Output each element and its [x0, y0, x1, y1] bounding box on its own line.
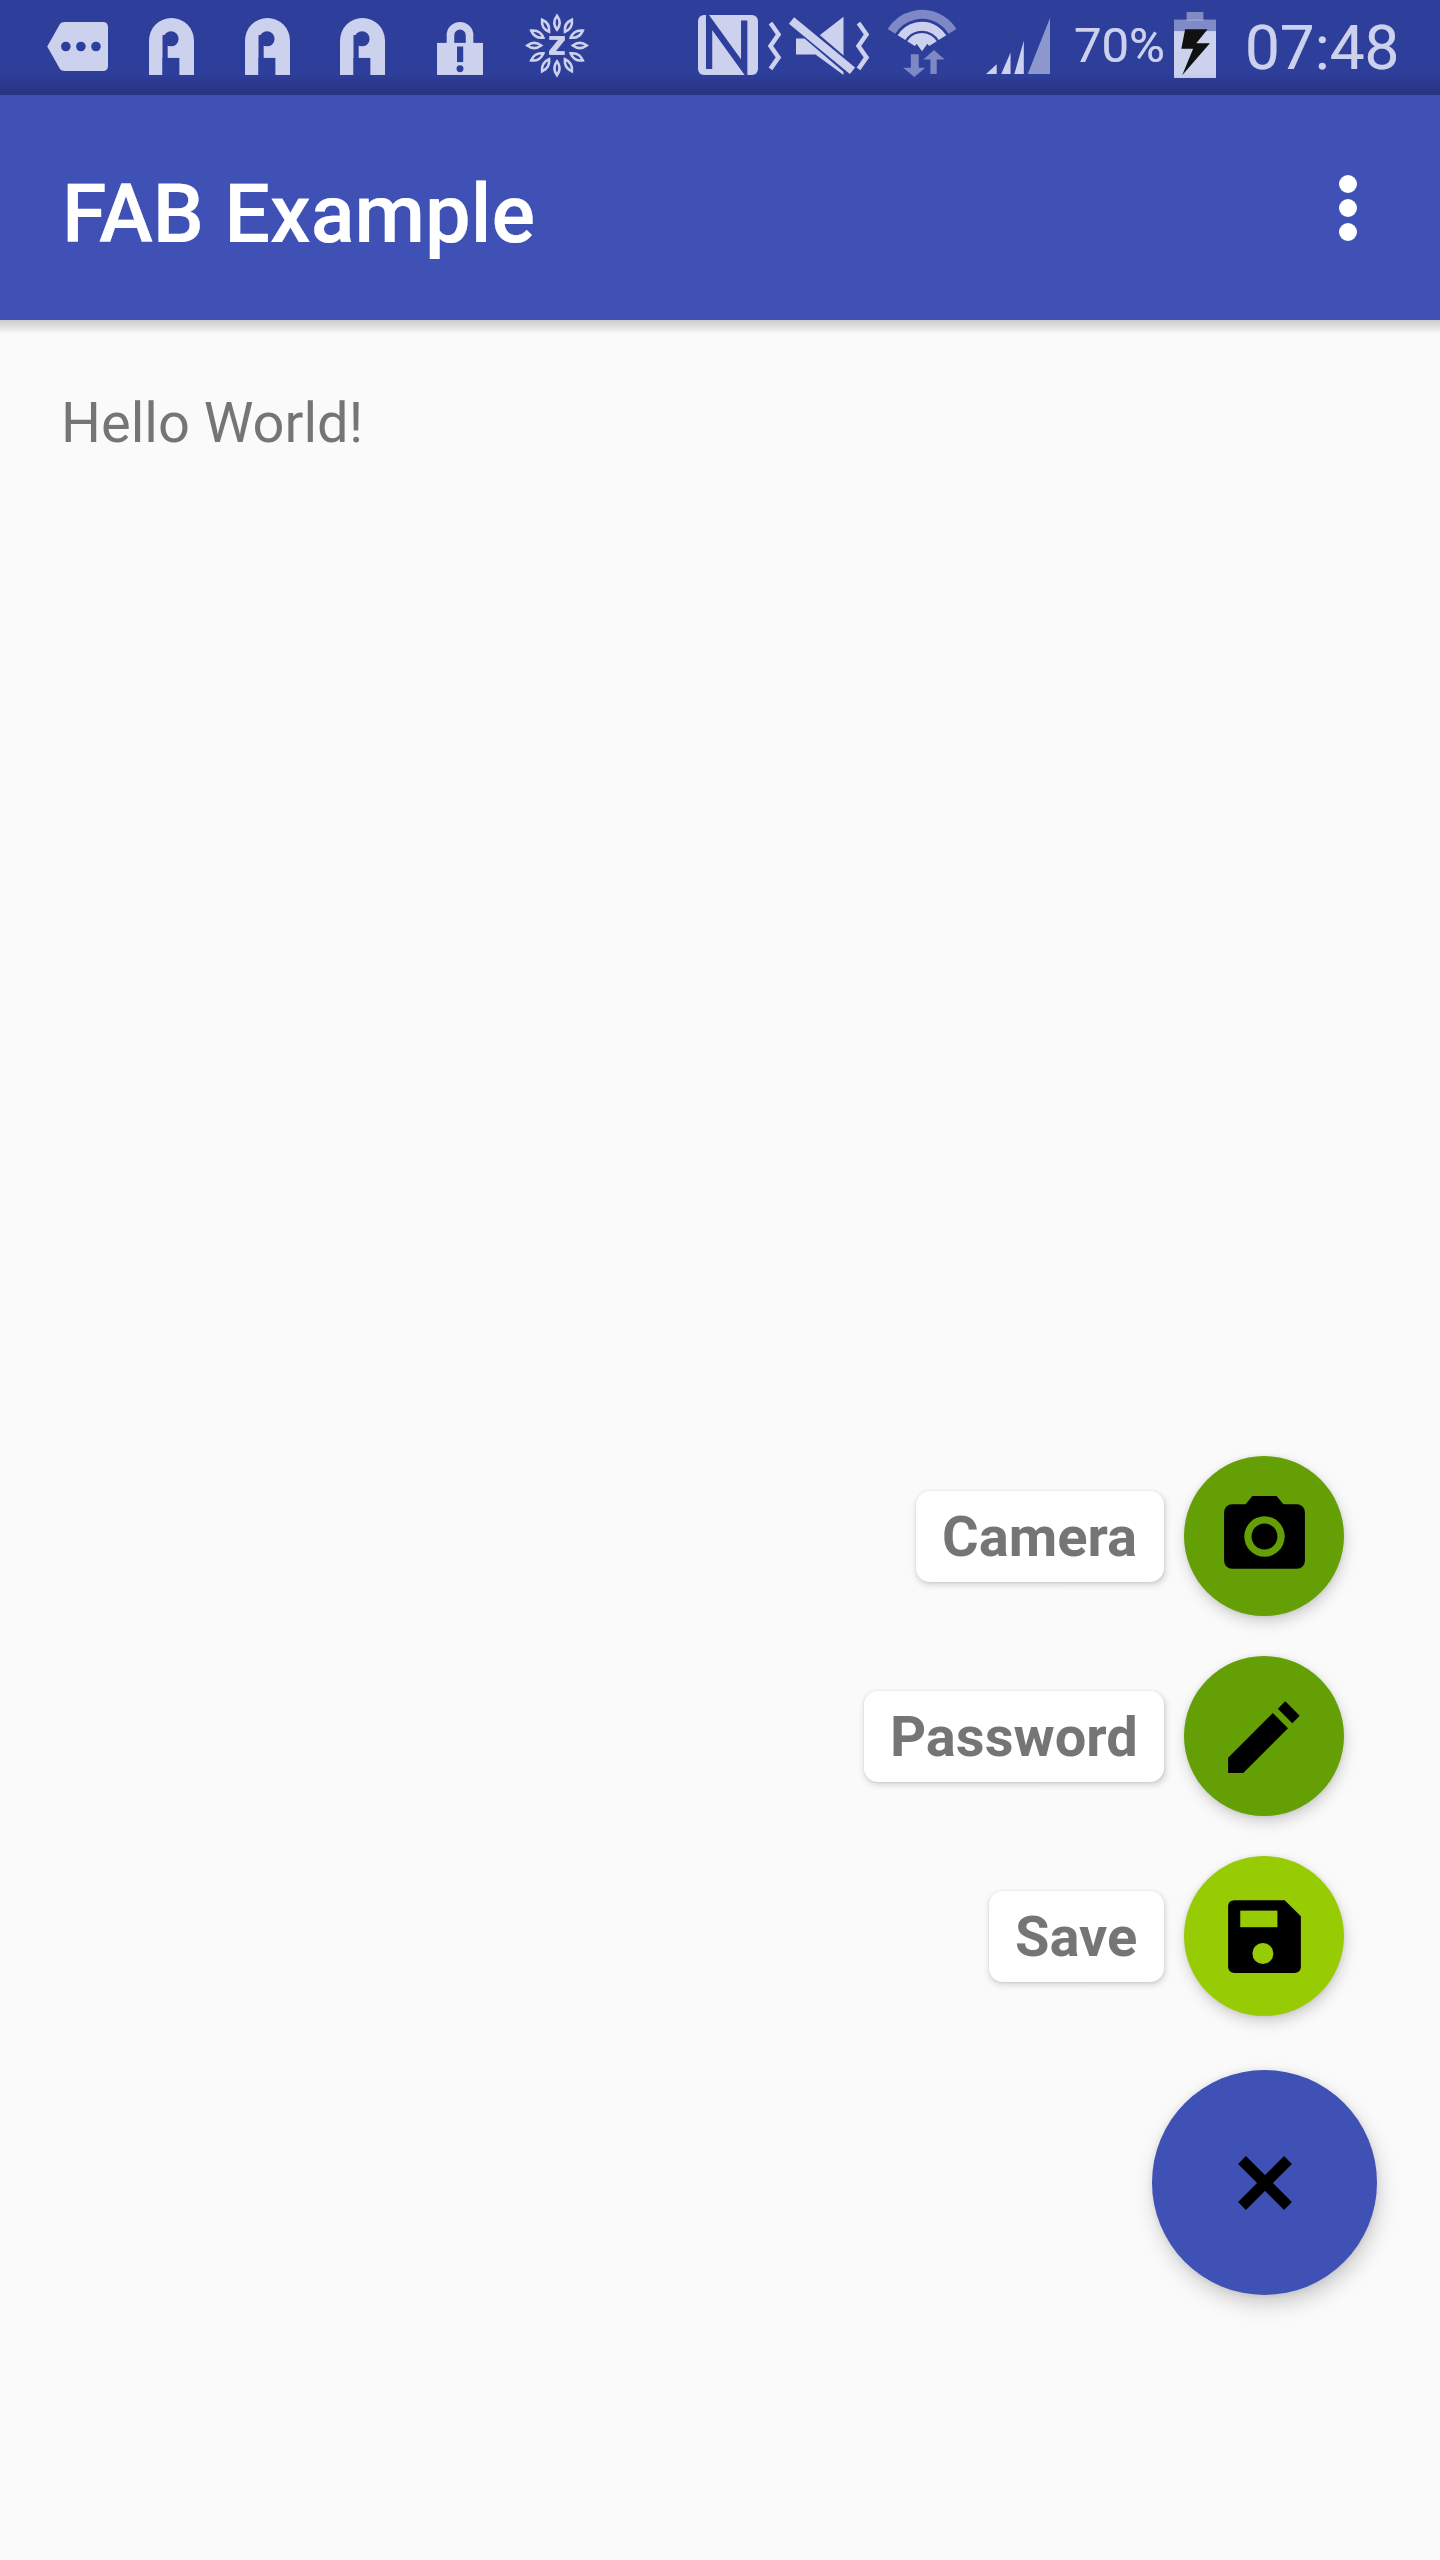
staticText: 07:48: [1245, 11, 1400, 84]
staticText: 70%: [1074, 17, 1165, 74]
button[interactable]: Close actions menu: [1152, 2070, 1377, 2295]
button[interactable]: Camera: [1184, 1456, 1344, 1616]
staticText: Hello World!: [61, 390, 364, 456]
staticText: Camera: [942, 1504, 1138, 1570]
button[interactable]: Password: [1184, 1656, 1344, 1816]
button[interactable]: Camera: [916, 1491, 1164, 1582]
button[interactable]: Save: [989, 1891, 1164, 1982]
staticText: Save: [1015, 1904, 1138, 1970]
staticText: FAB Example: [62, 167, 535, 262]
button[interactable]: Password: [864, 1691, 1164, 1782]
staticText: Password: [890, 1704, 1138, 1770]
button[interactable]: More options: [1298, 158, 1398, 258]
button[interactable]: Save: [1184, 1856, 1344, 2016]
